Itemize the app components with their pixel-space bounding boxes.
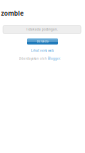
staticText: Lihat versi web	[31, 48, 54, 53]
staticText: .	[60, 57, 61, 60]
staticText: zombie	[1, 9, 24, 17]
staticText: Blogger	[48, 57, 60, 60]
button[interactable]: Blogger	[48, 57, 60, 60]
staticText: Tidak ada postingan.	[26, 28, 58, 31]
button[interactable]: Lihat versi web	[0, 48, 85, 53]
button[interactable]: Beranda	[27, 38, 58, 44]
staticText: Diberdayakan oleh	[19, 57, 48, 60]
staticText: Beranda	[37, 40, 48, 43]
